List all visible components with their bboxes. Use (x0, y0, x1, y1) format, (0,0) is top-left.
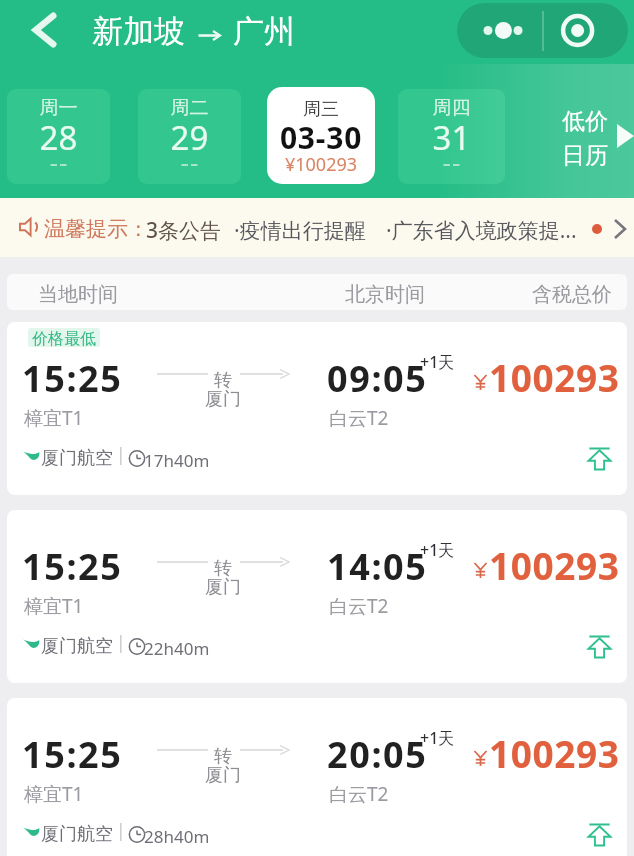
staticText: 3条公告 (146, 216, 222, 245)
staticText: 当地时间 (38, 282, 118, 307)
staticText: 厦门航空 (41, 635, 113, 658)
staticText: 新加坡 (92, 12, 185, 51)
staticText: 厦门 (157, 576, 289, 599)
staticText: 价格最低 (28, 329, 100, 347)
staticText: 28h40m (144, 825, 210, 848)
staticText: 转 (157, 557, 289, 580)
button[interactable]: Back (22, 7, 68, 53)
staticText: 100293 (489, 728, 620, 778)
staticText: 03-30 (267, 117, 375, 158)
button[interactable]: 周一 (7, 89, 110, 184)
staticText: 31 (398, 115, 505, 160)
staticText: 樟宜T1 (24, 405, 84, 431)
staticText: 白云T2 (329, 405, 389, 431)
button[interactable]: 低价 (548, 89, 634, 184)
staticText: 厦门 (157, 388, 289, 411)
staticText: +1天 (420, 539, 455, 561)
staticText: 北京时间 (345, 282, 425, 307)
staticText: 樟宜T1 (24, 781, 84, 807)
staticText: 17h40m (144, 449, 210, 472)
staticText: 29 (138, 115, 241, 160)
staticText: 15:25 (22, 354, 123, 403)
staticText: 厦门航空 (41, 447, 113, 470)
button[interactable]: Share flight (580, 439, 618, 477)
staticText: 白云T2 (329, 781, 389, 807)
button[interactable]: Share flight (580, 815, 618, 853)
staticText: 低价 (562, 107, 608, 136)
button[interactable]: 价格最低 (7, 322, 627, 495)
staticText: 白云T2 (329, 593, 389, 619)
button[interactable]: 15:25 (7, 510, 627, 683)
button[interactable]: 周三 (267, 87, 375, 184)
staticText: 09:05 (327, 354, 428, 403)
staticText: 含税总价 (532, 282, 612, 307)
button[interactable]: 周四 (398, 89, 505, 184)
staticText: ·广东省入境政策提... (386, 216, 577, 245)
staticText: 日历 (562, 141, 608, 170)
button[interactable]: 温馨提示： (0, 198, 634, 257)
staticText: +1天 (420, 351, 455, 373)
staticText: ·疫情出行提醒 (234, 216, 366, 245)
button[interactable]: 周二 (138, 89, 241, 184)
staticText: 28 (7, 115, 110, 160)
staticText: 广州 (233, 12, 295, 51)
staticText: 100293 (489, 352, 620, 402)
staticText: 周三 (267, 98, 375, 121)
button[interactable]: Share flight (580, 627, 618, 665)
staticText: 20:05 (327, 730, 428, 779)
staticText: 100293 (489, 540, 620, 590)
staticText: 周二 (138, 96, 241, 120)
button[interactable]: More options (457, 3, 628, 58)
staticText: 周一 (7, 96, 110, 120)
staticText: 转 (157, 745, 289, 768)
staticText: 15:25 (22, 730, 123, 779)
staticText: 樟宜T1 (24, 593, 84, 619)
staticText: 温馨提示： (44, 216, 149, 242)
staticText: 14:05 (327, 542, 428, 591)
staticText: 转 (157, 369, 289, 392)
staticText: ¥100293 (267, 152, 375, 177)
staticText: 厦门航空 (41, 823, 113, 846)
button[interactable]: 15:25 (7, 698, 627, 856)
staticText: 15:25 (22, 542, 123, 591)
staticText: 厦门 (157, 764, 289, 787)
staticText: 22h40m (144, 637, 210, 660)
staticText: 周四 (398, 96, 505, 120)
staticText: +1天 (420, 727, 455, 749)
